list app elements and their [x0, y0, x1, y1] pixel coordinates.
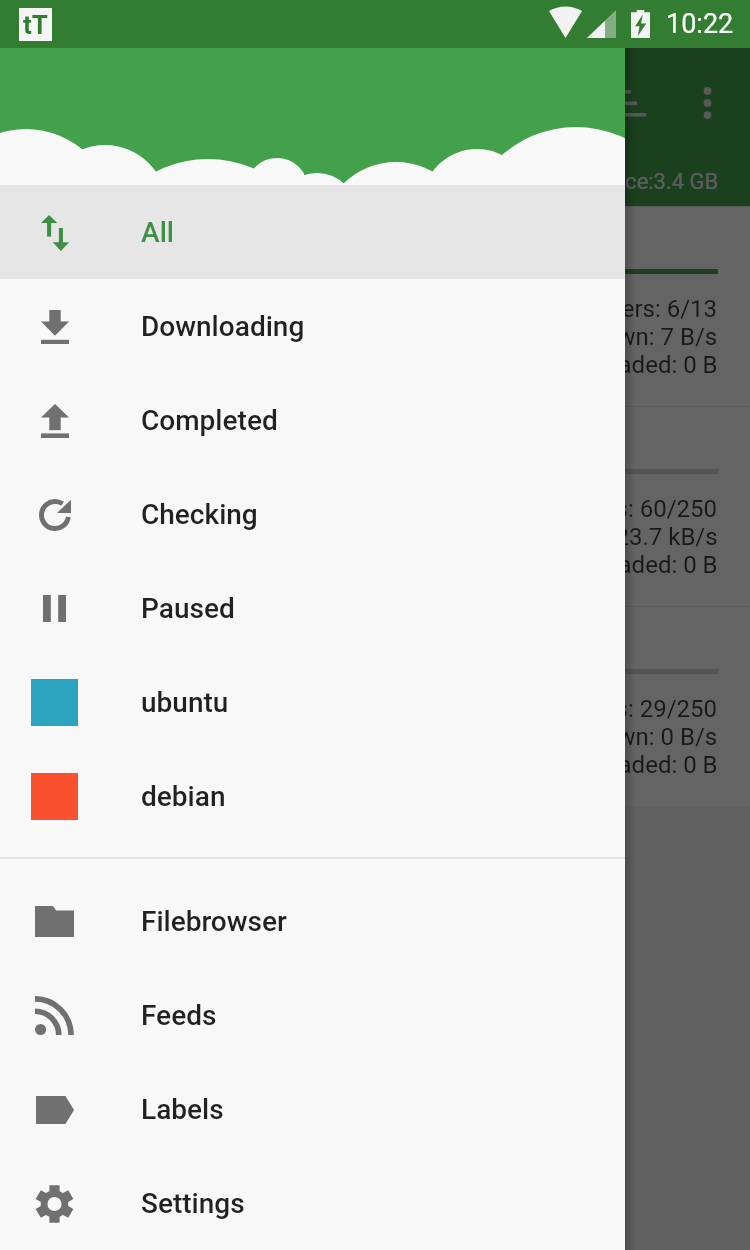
staticText: ubuntu — [141, 686, 229, 719]
staticText: Filebrowser — [141, 905, 287, 938]
staticText: debian — [141, 780, 226, 813]
staticText: Checking — [141, 498, 258, 531]
button[interactable]: debian-12.2.0-amd64.iso — [0, 406, 750, 606]
button[interactable]: Downloading — [0, 279, 625, 373]
staticText: debian-12.2.0-amd64.iso — [32, 420, 374, 456]
button[interactable]: archlinux-2023.10.iso — [0, 606, 750, 806]
staticText: Downloading — [141, 310, 305, 343]
button[interactable]: Labels — [0, 1062, 625, 1156]
button[interactable]: ubuntu-22.04.iso — [0, 206, 750, 406]
staticText: Down: 0 B/s — [588, 723, 718, 751]
staticText: Completed — [141, 404, 278, 437]
staticText: Down: 23.7 kB/s — [543, 523, 718, 551]
staticText: Peers: 6/13 — [594, 295, 718, 323]
staticText: Feeds — [141, 999, 217, 1032]
staticText: archlinux-2023.10.iso — [32, 620, 328, 656]
staticText: Paused — [141, 592, 235, 625]
button[interactable]: Settings — [0, 1156, 625, 1250]
button[interactable]: debian — [0, 749, 625, 843]
staticText: Peers: 60/250 — [567, 495, 718, 523]
staticText: Labels — [141, 1093, 224, 1126]
staticText: Uploaded: 0 B — [570, 751, 718, 779]
staticText: 10:22 — [666, 8, 734, 40]
staticText: tT — [23, 10, 48, 40]
staticText: Peers: 29/250 — [567, 695, 718, 723]
button[interactable]: All — [0, 185, 625, 279]
staticText: ubuntu-22.04.iso — [32, 220, 264, 256]
button[interactable]: More options — [683, 79, 731, 127]
button[interactable]: ubuntu — [0, 655, 625, 749]
button[interactable]: Filebrowser — [0, 874, 625, 968]
button[interactable]: Checking — [0, 467, 625, 561]
staticText: Uploaded: 0 B — [570, 551, 718, 579]
staticText: Settings — [141, 1187, 245, 1220]
button[interactable]: Paused — [0, 561, 625, 655]
button[interactable]: Completed — [0, 373, 625, 467]
staticText: Uploaded: 0 B — [570, 351, 718, 379]
button[interactable]: Feeds — [0, 968, 625, 1062]
staticText: All — [141, 216, 174, 249]
staticText: Down: 7 B/s — [588, 323, 718, 351]
staticText: Down: 7 B/s Up: 0 B/s Free space:3.4 GB — [301, 169, 719, 195]
